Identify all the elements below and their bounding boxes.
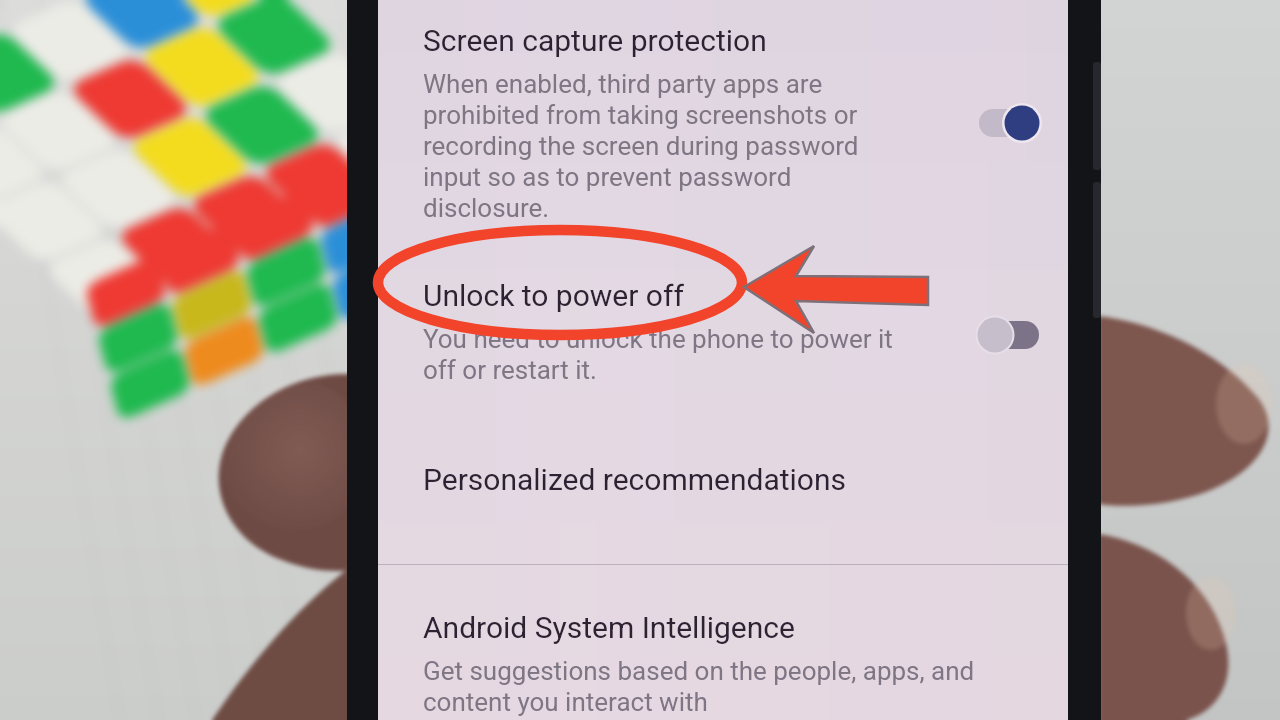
staticText: Android System Intelligence [423,610,795,645]
button[interactable]: Unlock to power off [378,260,1068,410]
button[interactable]: Screen capture protection [378,0,1068,246]
staticText: When enabled, third party apps are prohi… [423,69,859,224]
staticText: You need to unlock the phone to power it… [423,324,893,386]
button[interactable]: Personalized recommendations [378,438,1068,562]
button[interactable]: Android System Intelligence [378,596,1068,720]
staticText: Screen capture protection [423,23,767,58]
staticText: Unlock to power off [423,278,684,313]
button[interactable]: Unlock to power off switch, off [973,308,1049,362]
staticText: Personalized recommendations [423,462,847,497]
staticText: Get suggestions based on the people, app… [423,656,975,718]
button[interactable]: Screen capture protection switch, on [973,96,1049,150]
